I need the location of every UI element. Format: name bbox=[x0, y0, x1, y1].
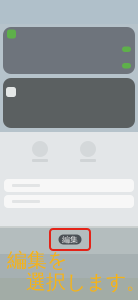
button[interactable]: Share target bbox=[78, 141, 98, 162]
staticText: 選択します。 bbox=[26, 270, 138, 294]
button[interactable]: Share target bbox=[30, 141, 50, 162]
button[interactable] bbox=[4, 195, 134, 208]
staticText: 編集を bbox=[7, 248, 67, 272]
button[interactable]: 編集 bbox=[50, 229, 90, 250]
staticText: 編集 bbox=[62, 235, 78, 244]
button[interactable] bbox=[4, 179, 134, 192]
